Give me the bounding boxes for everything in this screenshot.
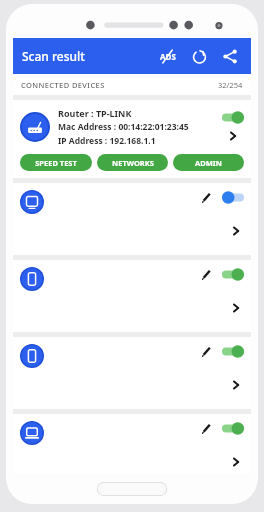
button[interactable]: Rename device [198, 343, 214, 359]
staticText: Mac Address : 00:14:22:01:23:45 [58, 121, 189, 133]
staticText: Scan result [22, 48, 85, 64]
staticText: Router : TP-LINK [58, 107, 132, 119]
button[interactable]: SPEED TEST [20, 154, 92, 171]
button[interactable]: Share [217, 43, 243, 69]
button[interactable]: Computer name-PC [13, 183, 251, 255]
button[interactable]: Details [228, 300, 244, 316]
staticText: ADS [160, 51, 176, 62]
button[interactable]: Lenovo [13, 414, 251, 474]
button[interactable]: Apple Inc [13, 337, 251, 409]
button[interactable]: Block device on [222, 422, 244, 435]
button[interactable]: Block device off [222, 191, 244, 204]
staticText: IP Address : 192.168.1.1 [58, 135, 156, 147]
button[interactable]: Remove ads [154, 43, 180, 69]
button[interactable]: Details [228, 223, 244, 239]
button[interactable]: Rename device [198, 189, 214, 205]
button[interactable]: Block device on [222, 111, 244, 124]
button[interactable]: Details [228, 377, 244, 393]
button[interactable]: ADMIN [173, 154, 244, 171]
staticText: 32/254 [218, 80, 243, 90]
staticText: ADMIN [195, 158, 222, 168]
button[interactable]: Router : TP-LINK [13, 100, 251, 178]
button[interactable]: Rename device [198, 420, 214, 436]
button[interactable]: Refresh [186, 43, 212, 69]
button[interactable]: Samsung S6 Edge [13, 260, 251, 332]
button[interactable]: Details [228, 454, 244, 470]
staticText: CONNECTED DEVICES [21, 80, 105, 90]
button[interactable]: NETWORKS [97, 154, 168, 171]
staticText: SPEED TEST [35, 158, 77, 168]
staticText: NETWORKS [112, 158, 154, 168]
button[interactable]: Block device on [222, 345, 244, 358]
button[interactable]: Block device on [222, 268, 244, 281]
button[interactable]: Rename device [198, 266, 214, 282]
button[interactable]: Details [225, 128, 241, 144]
